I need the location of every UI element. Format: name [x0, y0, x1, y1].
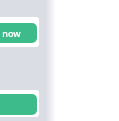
staticText: Book now — [0, 27, 21, 39]
button[interactable]: Book now — [0, 23, 37, 43]
button[interactable] — [0, 94, 37, 115]
